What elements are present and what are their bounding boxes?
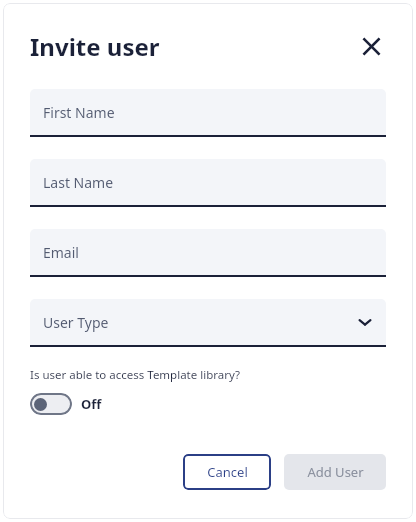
button[interactable]: Email: [30, 229, 386, 277]
staticText: User Type: [43, 313, 109, 332]
button[interactable]: First Name: [30, 89, 386, 137]
staticText: Last Name: [43, 173, 114, 192]
staticText: Off: [81, 395, 102, 413]
button[interactable]: Off: [30, 393, 102, 415]
staticText: Is user able to access Template library?: [30, 367, 241, 383]
button[interactable]: Add User: [284, 454, 386, 490]
button[interactable]: Close: [356, 31, 386, 61]
staticText: Add User: [307, 463, 364, 481]
button[interactable]: Cancel: [183, 454, 271, 490]
button[interactable]: User Type: [30, 299, 386, 347]
staticText: Email: [43, 243, 79, 262]
staticText: First Name: [43, 103, 115, 122]
staticText: Invite user: [30, 30, 160, 63]
staticText: Cancel: [207, 463, 248, 481]
button[interactable]: Last Name: [30, 159, 386, 207]
